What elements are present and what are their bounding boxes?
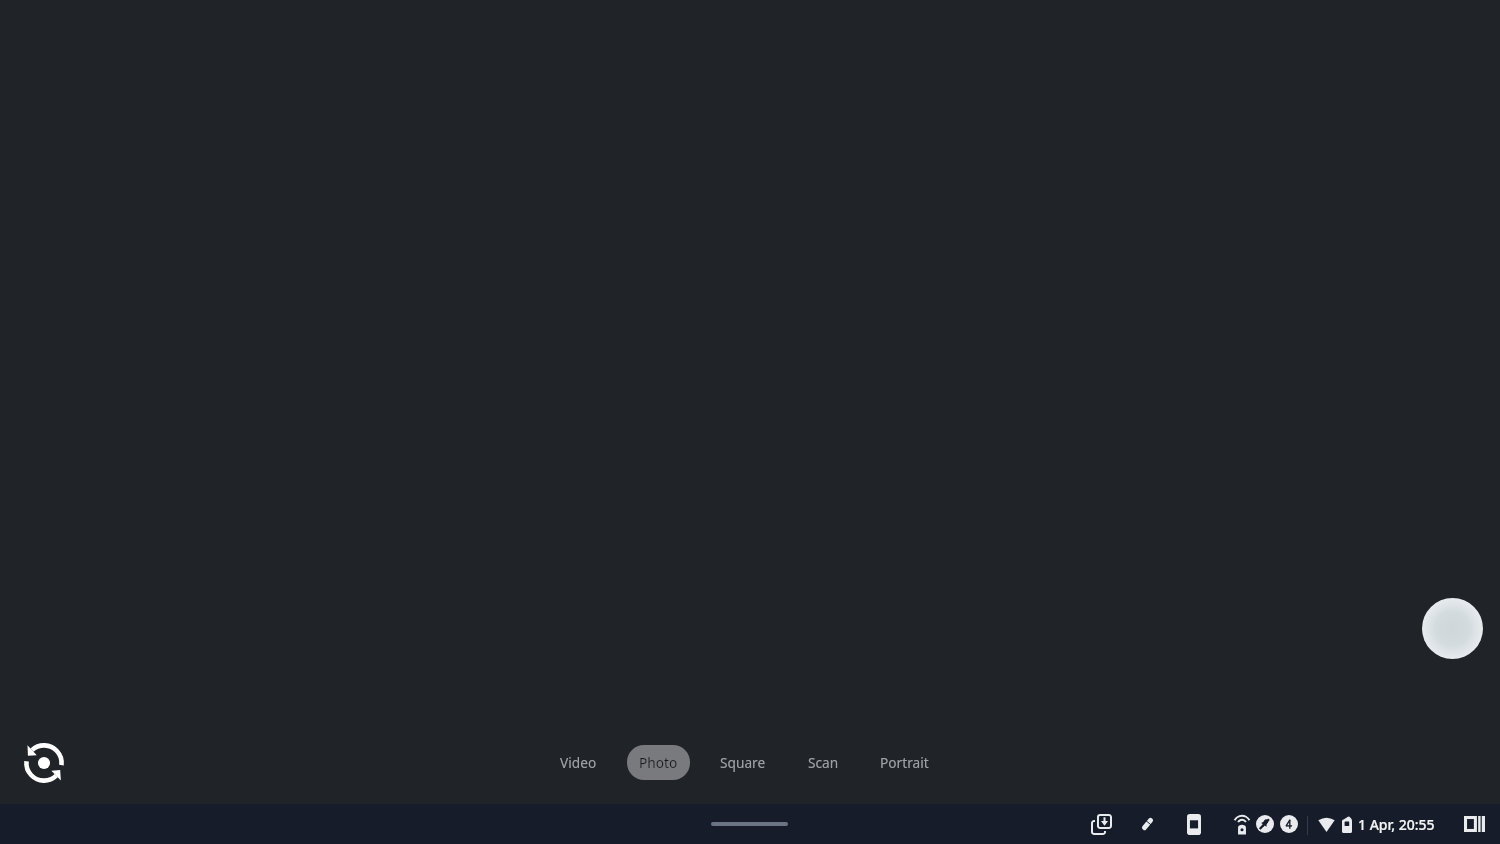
staticText: Scan (808, 753, 839, 772)
button[interactable]: Video (547, 745, 610, 780)
button[interactable]: Phone hub (1187, 814, 1201, 835)
button[interactable]: Portrait (867, 745, 942, 780)
staticText: Square (720, 753, 766, 772)
button[interactable]: Take photo (1422, 598, 1483, 659)
staticText: 1 Apr, 20:55 (1358, 815, 1435, 834)
button[interactable]: Square (707, 745, 779, 780)
button[interactable]: Wi-Fi (1318, 817, 1335, 832)
button[interactable]: Switch camera (21, 740, 66, 785)
button[interactable]: Battery (1342, 816, 1352, 833)
button[interactable]: Stylus (1140, 816, 1155, 832)
button[interactable]: VPN (1233, 815, 1251, 835)
button[interactable]: Photo (627, 745, 690, 780)
button[interactable]: Save to library (1091, 814, 1112, 835)
staticText: Portrait (880, 753, 929, 772)
button[interactable]: 1 Apr, 20:55 (1358, 815, 1435, 834)
button[interactable]: 4 notifications (1280, 815, 1298, 833)
staticText: Photo (639, 753, 678, 772)
button[interactable]: Do not disturb (1256, 815, 1274, 833)
button[interactable]: Split screen (1464, 816, 1485, 832)
button[interactable]: Scan (795, 745, 852, 780)
staticText: Video (560, 753, 597, 772)
